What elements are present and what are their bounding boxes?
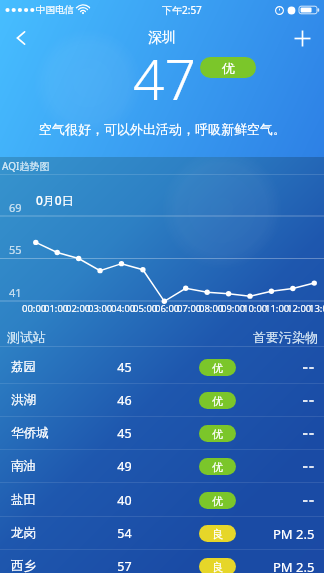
staticText: 02:00 bbox=[66, 302, 91, 315]
staticText: 下午2:57 bbox=[162, 3, 202, 17]
button[interactable]: Back bbox=[0, 20, 42, 56]
staticText: 中国电信 bbox=[36, 4, 74, 16]
staticText: 良 bbox=[212, 560, 223, 573]
staticText: 47 bbox=[133, 41, 196, 116]
staticText: 测试站 bbox=[7, 329, 46, 345]
staticText: 洪湖 bbox=[11, 392, 36, 408]
staticText: 西乡 bbox=[11, 558, 36, 573]
staticText: 11:00 bbox=[265, 302, 290, 315]
staticText: 0月0日 bbox=[36, 192, 74, 208]
staticText: 08:00 bbox=[199, 302, 224, 315]
staticText: 00:00 bbox=[22, 302, 47, 315]
button[interactable]: 洪湖 bbox=[0, 384, 324, 417]
staticText: 空气很好，可以外出活动，呼吸新鲜空气。 bbox=[39, 121, 286, 137]
staticText: 69 bbox=[9, 200, 22, 215]
button[interactable]: 荔园 bbox=[0, 351, 324, 384]
staticText: 46 bbox=[109, 392, 140, 409]
staticText: 优 bbox=[212, 361, 223, 375]
staticText: 40 bbox=[109, 492, 140, 509]
staticText: 45 bbox=[109, 359, 140, 376]
staticText: 49 bbox=[109, 458, 140, 475]
staticText: 荔园 bbox=[11, 359, 36, 375]
staticText: 06:00 bbox=[155, 302, 180, 315]
button[interactable]: 华侨城 bbox=[0, 417, 324, 450]
staticText: 华侨城 bbox=[11, 425, 49, 441]
button[interactable]: 西乡 bbox=[0, 550, 324, 573]
staticText: 04:00 bbox=[111, 302, 136, 315]
staticText: 南油 bbox=[11, 458, 36, 474]
staticText: 54 bbox=[109, 525, 140, 542]
staticText: 41 bbox=[9, 285, 22, 300]
staticText: 优 bbox=[212, 494, 223, 508]
button[interactable]: Add city bbox=[280, 20, 324, 56]
staticText: 首要污染物 bbox=[253, 329, 318, 345]
button[interactable]: 南油 bbox=[0, 450, 324, 483]
staticText: 10:00 bbox=[243, 302, 268, 315]
staticText: 05:00 bbox=[133, 302, 158, 315]
staticText: 57 bbox=[109, 558, 140, 573]
button[interactable]: 盐田 bbox=[0, 484, 324, 517]
staticText: PM 2.5 bbox=[273, 558, 315, 573]
staticText: 优 bbox=[212, 427, 223, 441]
staticText: PM 2.5 bbox=[273, 525, 315, 543]
staticText: 09:00 bbox=[221, 302, 246, 315]
staticText: 01:00 bbox=[44, 302, 69, 315]
staticText: 55 bbox=[9, 242, 22, 257]
staticText: 良 bbox=[212, 527, 223, 541]
staticText: 优 bbox=[212, 394, 223, 408]
staticText: 优 bbox=[222, 60, 235, 76]
staticText: 12:00 bbox=[287, 302, 312, 315]
staticText: 优 bbox=[212, 460, 223, 474]
staticText: 深圳 bbox=[148, 29, 176, 47]
button[interactable]: 优 bbox=[200, 57, 256, 78]
staticText: 盐田 bbox=[11, 492, 36, 508]
button[interactable]: 龙岗 bbox=[0, 517, 324, 550]
staticText: AQI趋势图 bbox=[2, 159, 50, 173]
staticText: 龙岗 bbox=[11, 525, 36, 541]
staticText: 45 bbox=[109, 425, 140, 442]
staticText: 13:00 bbox=[309, 302, 324, 315]
staticText: 07:00 bbox=[177, 302, 202, 315]
staticText: 03:00 bbox=[88, 302, 113, 315]
